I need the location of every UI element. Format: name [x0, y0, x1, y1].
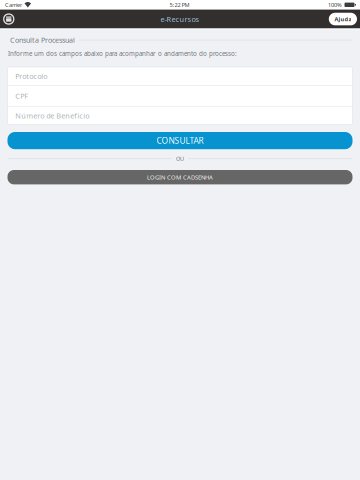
- button[interactable]: CPF: [7, 86, 352, 106]
- button[interactable]: Protocolo: [7, 67, 352, 85]
- staticText: Consulta Processual: [10, 35, 75, 45]
- staticText: OU: [176, 155, 184, 162]
- button[interactable]: Ajuda: [329, 13, 357, 25]
- staticText: Número de Benefício: [15, 111, 89, 121]
- staticText: 100%: [328, 1, 342, 9]
- staticText: CONSULTAR: [156, 135, 203, 146]
- staticText: Informe um dos campos abaixo para acompa…: [8, 49, 237, 58]
- staticText: Carrier: [5, 1, 22, 9]
- staticText: 5:22 PM: [169, 1, 189, 9]
- button[interactable]: CONSULTAR: [7, 132, 352, 149]
- staticText: CPF: [15, 91, 28, 101]
- staticText: LOGIN COM CADSENHA: [147, 173, 213, 181]
- staticText: Protocolo: [15, 71, 47, 81]
- button[interactable]: Menu: [0, 10, 17, 28]
- staticText: Ajuda: [334, 15, 351, 23]
- button[interactable]: Número de Benefício: [7, 107, 352, 125]
- button[interactable]: LOGIN COM CADSENHA: [7, 170, 352, 184]
- staticText: e-Recursos: [160, 14, 199, 24]
